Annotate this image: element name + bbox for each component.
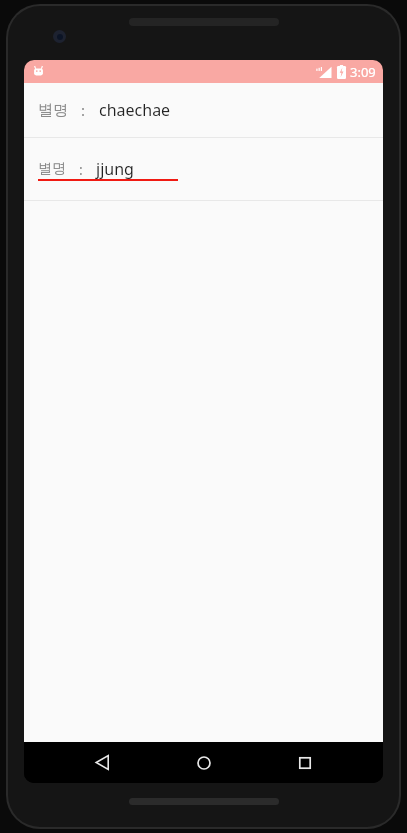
staticText: chaechae: [99, 99, 171, 121]
button[interactable]: 별명: [24, 138, 383, 200]
staticText: 3:09: [350, 63, 376, 81]
staticText: :: [81, 100, 86, 120]
staticText: 별명: [38, 101, 68, 120]
button[interactable]: Recent apps: [281, 742, 329, 783]
button[interactable]: Back: [78, 742, 126, 783]
button[interactable]: Home: [180, 742, 228, 783]
button[interactable]: 별명: [24, 83, 383, 137]
staticText: 별명: [38, 160, 66, 178]
staticText: jjung: [96, 158, 134, 180]
staticText: :: [79, 160, 83, 179]
